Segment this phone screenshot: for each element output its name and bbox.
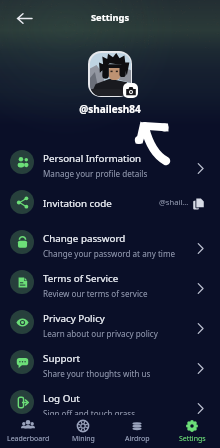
button[interactable]: Support xyxy=(0,342,220,382)
staticText: Invitation code xyxy=(43,197,112,210)
staticText: Leaderboard xyxy=(7,434,50,444)
staticText: Share your thoughts with us xyxy=(43,368,151,379)
staticText: Personal Information xyxy=(43,152,142,165)
button[interactable]: Profile photo xyxy=(88,51,132,97)
staticText: @shail… xyxy=(159,197,189,207)
staticText: @shailesh84 xyxy=(0,102,220,116)
staticText: Log Out xyxy=(43,392,80,405)
staticText: Privacy Policy xyxy=(43,312,105,325)
staticText: Support xyxy=(43,352,80,365)
button[interactable]: Terms of Service xyxy=(0,262,220,302)
button[interactable]: Mining xyxy=(57,417,109,446)
staticText: Change your password at any time xyxy=(43,248,176,259)
button[interactable]: Back xyxy=(9,3,39,33)
staticText: Review our terms of service xyxy=(43,288,148,299)
button[interactable]: Invitation code xyxy=(0,182,220,222)
staticText: Sign off and touch grass xyxy=(43,408,136,419)
staticText: Learn about our privacy policy xyxy=(43,328,158,339)
staticText: Airdrop xyxy=(125,434,150,444)
button[interactable]: Privacy Policy xyxy=(0,302,220,342)
staticText: Change password xyxy=(43,232,126,245)
button[interactable]: Log Out xyxy=(0,382,220,422)
staticText: Manage your profile details xyxy=(43,168,148,179)
staticText: Settings xyxy=(179,434,206,444)
button[interactable]: Airdrop xyxy=(111,417,163,446)
button[interactable]: Change password xyxy=(0,222,220,262)
button[interactable]: Personal Information xyxy=(0,142,220,182)
staticText: Terms of Service xyxy=(43,272,119,285)
staticText: Settings xyxy=(91,11,130,24)
button[interactable]: Leaderboard xyxy=(2,417,54,446)
staticText: Mining xyxy=(72,434,95,444)
button[interactable]: Change photo xyxy=(123,83,138,98)
button[interactable]: Settings xyxy=(166,417,218,446)
